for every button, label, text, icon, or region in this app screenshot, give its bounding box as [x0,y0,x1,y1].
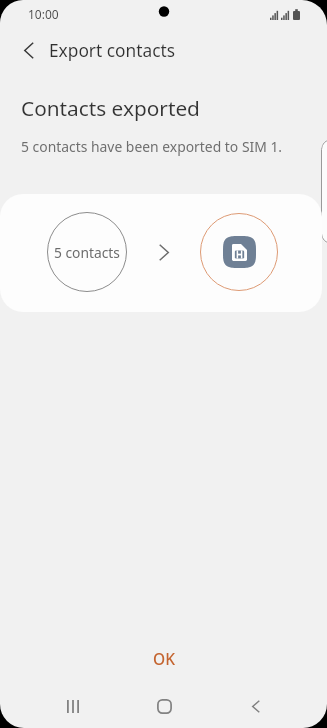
staticText: 5 contacts have been exported to SIM 1. [21,137,283,156]
staticText: OK [153,648,175,669]
button[interactable]: OK [125,640,203,677]
button[interactable]: Recent apps [27,685,119,727]
button[interactable]: 5 contacts [0,194,322,312]
staticText: 5 contacts [54,243,120,262]
staticText: Contacts exported [21,94,200,122]
staticText: 10:00 [28,6,59,22]
staticText: Export contacts [49,39,175,63]
button[interactable]: Back [210,685,301,727]
button[interactable]: Back [9,30,49,70]
button[interactable]: Home [119,685,210,727]
